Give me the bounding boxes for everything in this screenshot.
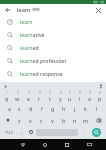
staticText: 0 <box>99 91 101 95</box>
staticText: f <box>41 105 43 112</box>
staticText: learned <box>20 44 39 51</box>
staticText: n <box>73 117 77 124</box>
staticText: 2 <box>17 91 19 95</box>
staticText: y <box>59 95 62 102</box>
staticText: l <box>96 105 98 112</box>
staticText: learned response <box>20 70 63 77</box>
button[interactable]: 8 <box>75 90 85 102</box>
staticText: q <box>5 95 9 102</box>
button[interactable]: Back <box>3 5 13 15</box>
button[interactable]: Switch keyboard <box>78 139 100 150</box>
button[interactable]: learn <box>17 4 93 15</box>
staticText: b <box>62 117 66 124</box>
staticText: g <box>51 105 55 112</box>
staticText: c <box>40 117 43 124</box>
button[interactable]: learned response <box>0 67 106 80</box>
button[interactable]: Voice input <box>98 83 104 89</box>
button[interactable]: Home <box>34 139 56 150</box>
staticText: m <box>83 117 88 124</box>
button[interactable]: Expand toolbar <box>2 83 8 89</box>
button[interactable]: 3 <box>23 90 34 102</box>
button[interactable]: learned profession <box>0 54 106 67</box>
button[interactable]: n <box>69 114 80 126</box>
button[interactable]: Period <box>79 126 88 138</box>
button[interactable]: x <box>25 114 36 126</box>
button[interactable]: Emoji <box>26 126 35 138</box>
staticText: h <box>62 105 66 112</box>
button[interactable]: Backspace <box>91 114 105 126</box>
button[interactable]: g <box>47 102 58 114</box>
staticText: z <box>18 117 21 124</box>
button[interactable]: c <box>36 114 47 126</box>
button[interactable]: Recents <box>56 139 78 150</box>
button[interactable]: 1 <box>1 90 12 102</box>
button[interactable]: h <box>58 102 69 114</box>
staticText: s <box>18 105 21 112</box>
button[interactable]: a <box>4 102 14 114</box>
button[interactable]: learn <box>0 15 106 28</box>
staticText: 3 <box>28 91 30 95</box>
staticText: 7 <box>69 91 71 95</box>
staticText: 4 <box>39 91 41 95</box>
button[interactable]: learned <box>0 41 106 54</box>
staticText: r <box>38 95 41 102</box>
staticText: d <box>29 105 33 112</box>
staticText: 8 <box>79 91 81 95</box>
button[interactable]: Shift <box>1 114 14 126</box>
button[interactable]: s <box>14 102 25 114</box>
staticText: w <box>15 95 20 102</box>
staticText: v <box>51 117 54 124</box>
button[interactable]: l <box>91 102 102 114</box>
button[interactable]: k <box>80 102 91 114</box>
button[interactable]: z <box>14 114 25 126</box>
staticText: learn <box>17 6 31 13</box>
button[interactable]: 0 <box>95 90 105 102</box>
button[interactable]: learnative <box>0 28 106 41</box>
staticText: learned profession <box>20 57 67 64</box>
button[interactable]: b <box>58 114 69 126</box>
staticText: e <box>27 95 30 102</box>
button[interactable]: ?123 <box>1 126 17 138</box>
staticText: 9 <box>89 91 91 95</box>
staticText: 1 <box>6 91 8 95</box>
staticText: u <box>68 95 72 102</box>
button[interactable]: 4 <box>34 90 45 102</box>
button[interactable]: 5 <box>45 90 55 102</box>
staticText: a <box>8 105 11 112</box>
staticText: . <box>83 129 85 136</box>
button[interactable]: Clear search <box>93 5 103 15</box>
staticText: x <box>29 117 32 124</box>
staticText: , <box>21 129 23 136</box>
button[interactable]: Comma <box>17 126 26 138</box>
button[interactable]: 7 <box>65 90 75 102</box>
button[interactable]: 6 <box>55 90 65 102</box>
button[interactable]: 9 <box>85 90 95 102</box>
staticText: p <box>98 95 102 102</box>
button[interactable]: v <box>47 114 58 126</box>
staticText: i <box>79 95 81 102</box>
staticText: 5 <box>49 91 51 95</box>
button[interactable]: j <box>69 102 80 114</box>
staticText: learnative <box>20 31 45 38</box>
staticText: 6 <box>60 91 62 95</box>
button[interactable]: 2 <box>12 90 23 102</box>
button[interactable]: f <box>36 102 47 114</box>
staticText: learn <box>20 18 33 25</box>
staticText: j <box>74 105 76 112</box>
staticText: t <box>49 95 51 102</box>
staticText: ?123 <box>5 130 13 135</box>
button[interactable]: Back <box>12 139 34 150</box>
button[interactable]: d <box>25 102 36 114</box>
button[interactable]: Search <box>88 126 105 138</box>
staticText: o <box>88 95 92 102</box>
button[interactable]: m <box>80 114 91 126</box>
staticText: k <box>84 105 87 112</box>
